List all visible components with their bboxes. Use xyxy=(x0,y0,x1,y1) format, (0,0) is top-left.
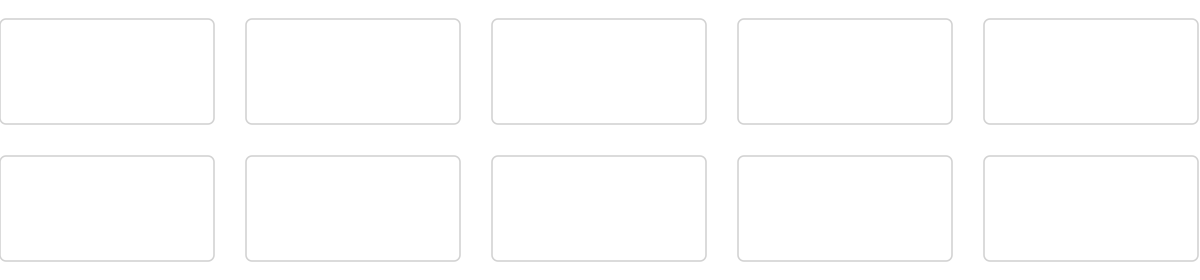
button[interactable]: Card xyxy=(246,19,460,124)
button[interactable]: Card xyxy=(246,156,460,261)
button[interactable]: Card xyxy=(738,156,952,261)
button[interactable]: Card xyxy=(0,19,214,124)
button[interactable]: Card xyxy=(492,19,706,124)
button[interactable]: Card xyxy=(492,156,706,261)
button[interactable]: Card xyxy=(984,156,1198,261)
button[interactable]: Card xyxy=(738,19,952,124)
button[interactable]: Card xyxy=(984,19,1198,124)
button[interactable]: Card xyxy=(0,156,214,261)
